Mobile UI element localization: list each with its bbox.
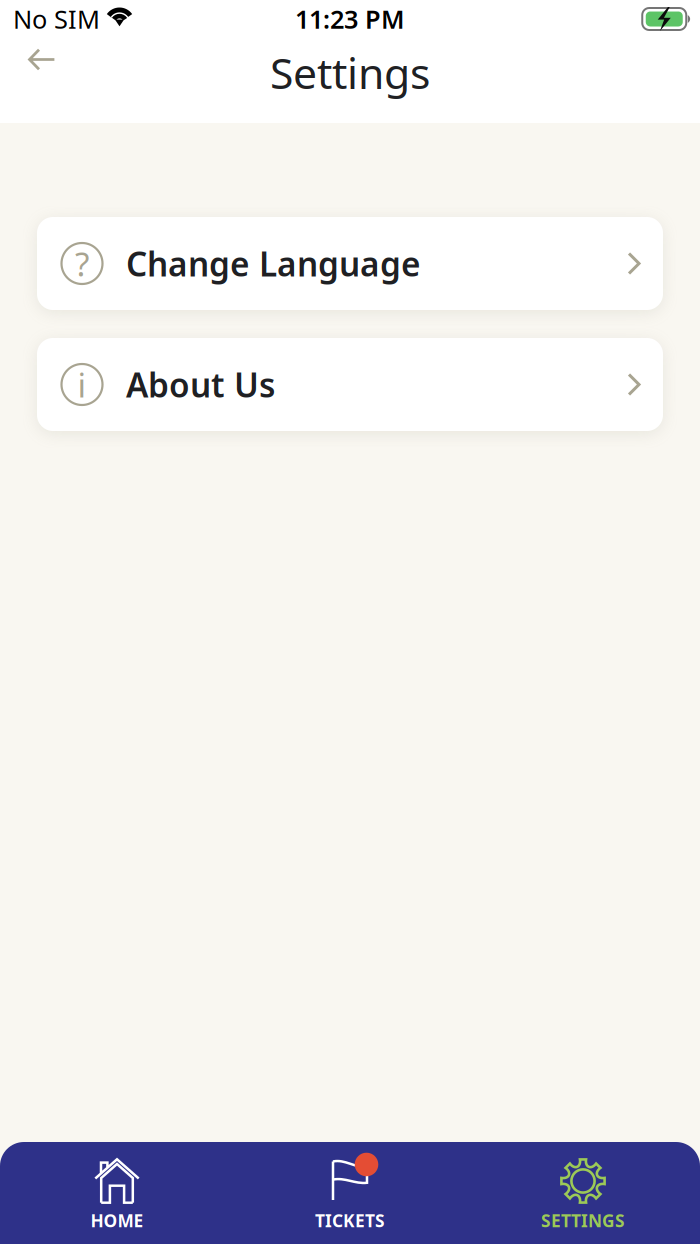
button[interactable]: ? <box>37 217 663 310</box>
button[interactable]: TICKETS <box>233 1142 466 1244</box>
button[interactable]: SETTINGS <box>466 1142 699 1244</box>
staticText: No SIM <box>13 2 100 36</box>
button[interactable]: i <box>37 338 663 431</box>
staticText: Settings <box>270 44 430 101</box>
staticText: HOME <box>90 1209 143 1232</box>
staticText: ? <box>75 241 89 286</box>
staticText: 11:23 PM <box>295 2 405 36</box>
button[interactable]: Back <box>13 33 71 85</box>
staticText: SETTINGS <box>541 1209 625 1232</box>
staticText: i <box>77 362 86 407</box>
staticText: About Us <box>126 362 275 407</box>
button[interactable]: HOME <box>0 1142 233 1244</box>
staticText: TICKETS <box>315 1209 385 1232</box>
staticText: Change Language <box>126 241 421 286</box>
